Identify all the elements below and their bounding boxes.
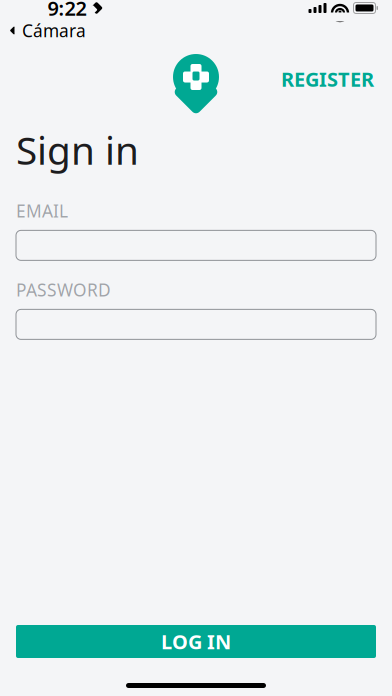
button[interactable] [16, 230, 376, 260]
staticText: Sign in [16, 124, 139, 175]
button[interactable] [16, 309, 376, 339]
button[interactable]: REGISTER [273, 60, 382, 98]
staticText: 9:22 [47, 0, 86, 21]
button[interactable]: LOG IN [16, 625, 376, 658]
staticText: REGISTER [281, 66, 374, 92]
staticText: Cámara [22, 19, 86, 42]
staticText: PASSWORD [16, 278, 111, 301]
staticText: LOG IN [161, 628, 231, 655]
button[interactable]: Cámara [0, 18, 86, 42]
staticText: EMAIL [16, 199, 68, 222]
